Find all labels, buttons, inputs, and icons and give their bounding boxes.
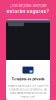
staticText: Nunca compartimos los datos de [8,84,48,87]
staticText: estarán seguras? [6,9,49,14]
staticText: ¿Tus tarjetas siempre [9,3,46,8]
staticText: tranquilidad. [20,95,36,98]
staticText: Tu tarjeta es privada [11,77,44,81]
staticText: tu tarjeta con los comercios, así [9,88,47,91]
staticText: que puedes comprar con toda [10,91,46,95]
